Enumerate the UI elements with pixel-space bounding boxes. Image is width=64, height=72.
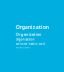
staticText: Organization <box>15 23 48 30</box>
staticText: Organization <box>15 31 41 37</box>
staticText: welcome back to work <box>15 47 30 49</box>
staticText: welcome back to work <box>15 42 44 46</box>
staticText: Organization <box>15 38 34 41</box>
